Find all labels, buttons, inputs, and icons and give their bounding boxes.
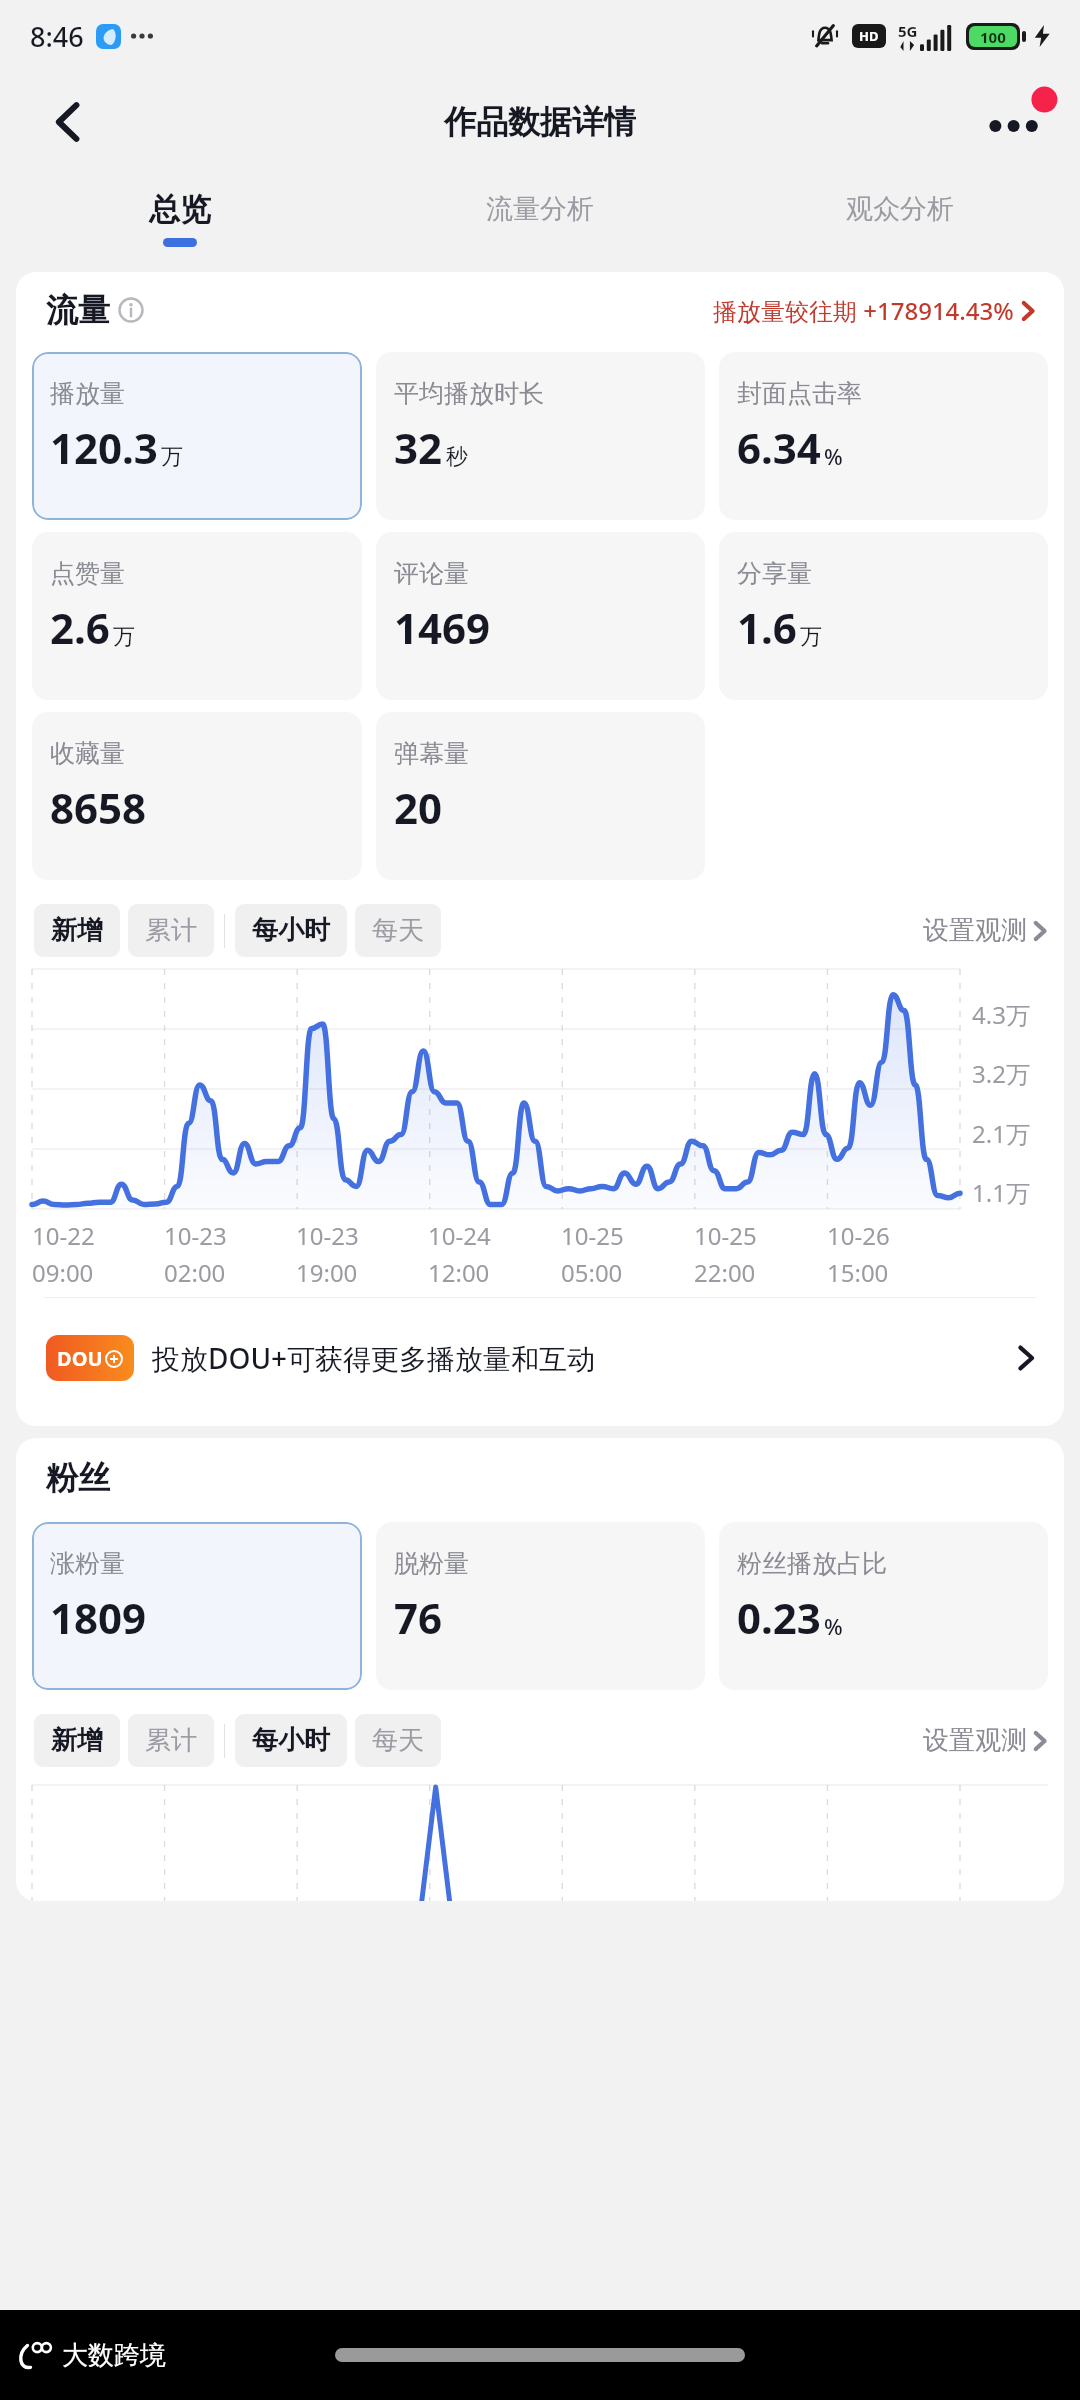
staticText: 3.2万 (972, 1057, 1030, 1090)
staticText: 15:00 (827, 1256, 889, 1289)
staticText: % (824, 1611, 843, 1641)
button[interactable]: 每天 (355, 1714, 441, 1767)
button[interactable]: 封面点击率 (719, 352, 1048, 520)
button[interactable]: 收藏量 (32, 712, 362, 880)
button[interactable]: 设置观测 (923, 1724, 1046, 1757)
button[interactable]: 评论量 (376, 532, 705, 700)
staticText: 10-26 (827, 1219, 890, 1252)
staticText: 10-25 (694, 1219, 757, 1252)
button[interactable]: 涨粉量 (32, 1522, 362, 1690)
staticText: 76 (394, 1589, 443, 1646)
staticText: 评论量 (394, 558, 469, 589)
staticText: 32 (394, 419, 443, 476)
staticText: 5G (898, 21, 918, 41)
button[interactable]: 分享量 (719, 532, 1048, 700)
staticText: 设置观测 (923, 914, 1027, 947)
staticText: 粉丝播放占比 (737, 1548, 887, 1579)
staticText: 秒 (446, 443, 468, 471)
staticText: 万 (800, 623, 822, 651)
staticText: 累计 (145, 914, 197, 947)
staticText: % (824, 441, 843, 471)
staticText: 0.23 (737, 1589, 821, 1646)
staticText: 每天 (372, 1724, 424, 1757)
button[interactable]: More options (980, 87, 1050, 157)
staticText: 新增 (51, 914, 103, 947)
staticText: 涨粉量 (50, 1548, 125, 1579)
button[interactable]: 设置观测 (923, 914, 1046, 947)
staticText: 1469 (394, 599, 491, 656)
button[interactable]: 每天 (355, 904, 441, 957)
staticText: 播放量 (50, 378, 125, 409)
staticText: 总览 (149, 190, 211, 229)
staticText: 观众分析 (846, 192, 954, 226)
staticText: 1809 (50, 1589, 147, 1646)
staticText: 10-24 (428, 1219, 491, 1252)
button[interactable]: DOU (32, 1304, 1048, 1412)
button[interactable]: 新增 (34, 1714, 120, 1767)
staticText: 流量 (46, 290, 110, 330)
staticText: 10-23 (164, 1219, 227, 1252)
button[interactable]: 点赞量 (32, 532, 362, 700)
button[interactable]: Back (40, 94, 96, 150)
staticText: 22:00 (694, 1256, 756, 1289)
staticText: 每小时 (252, 1724, 330, 1757)
staticText: 05:00 (561, 1256, 623, 1289)
staticText: HD (859, 27, 879, 45)
staticText: 1.1万 (972, 1176, 1030, 1209)
staticText: 新增 (51, 1724, 103, 1757)
button[interactable]: 播放量较往期 +178914.43% (713, 294, 1034, 327)
staticText: 设置观测 (923, 1724, 1027, 1757)
staticText: 作品数据详情 (444, 102, 636, 142)
staticText: 每小时 (252, 914, 330, 947)
staticText: 投放DOU+可获得更多播放量和互动 (152, 1339, 596, 1377)
button[interactable]: 观众分析 (720, 172, 1080, 264)
staticText: 点赞量 (50, 558, 125, 589)
button[interactable]: 流量分析 (360, 172, 720, 264)
button[interactable]: 粉丝播放占比 (719, 1522, 1048, 1690)
staticText: 弹幕量 (394, 738, 469, 769)
staticText: 封面点击率 (737, 378, 862, 409)
button[interactable]: 每小时 (235, 1714, 347, 1767)
staticText: 10-22 (32, 1219, 95, 1252)
staticText: 平均播放时长 (394, 378, 544, 409)
staticText: 120.3 (50, 419, 158, 476)
staticText: 2.6 (50, 599, 110, 656)
staticText: 累计 (145, 1724, 197, 1757)
button[interactable]: 累计 (128, 904, 214, 957)
button[interactable]: 每小时 (235, 904, 347, 957)
button[interactable]: 累计 (128, 1714, 214, 1767)
staticText: 8658 (50, 779, 147, 836)
staticText: 10-25 (561, 1219, 624, 1252)
staticText: 19:00 (296, 1256, 358, 1289)
staticText: 12:00 (428, 1256, 490, 1289)
button[interactable]: 脱粉量 (376, 1522, 705, 1690)
staticText: 脱粉量 (394, 1548, 469, 1579)
button[interactable]: 总览 (0, 172, 360, 264)
staticText: 8:46 (30, 18, 84, 55)
staticText: 1.6 (737, 599, 797, 656)
button[interactable]: 播放量 (32, 352, 362, 520)
staticText: 万 (113, 623, 135, 651)
staticText: DOU (57, 1345, 103, 1372)
staticText: 万 (161, 443, 183, 471)
staticText: 大数跨境 (62, 2339, 166, 2372)
button[interactable]: 弹幕量 (376, 712, 705, 880)
staticText: 100 (980, 27, 1006, 47)
staticText: 20 (394, 779, 443, 836)
staticText: 收藏量 (50, 738, 125, 769)
button[interactable]: 新增 (34, 904, 120, 957)
staticText: 4.3万 (972, 998, 1030, 1031)
staticText: 09:00 (32, 1256, 94, 1289)
staticText: 流量分析 (486, 192, 594, 226)
staticText: 粉丝 (46, 1458, 110, 1498)
staticText: 播放量较往期 +178914.43% (713, 294, 1014, 327)
staticText: 6.34 (737, 419, 821, 476)
button[interactable]: 平均播放时长 (376, 352, 705, 520)
staticText: 2.1万 (972, 1117, 1030, 1150)
staticText: 分享量 (737, 558, 812, 589)
staticText: 10-23 (296, 1219, 359, 1252)
staticText: 每天 (372, 914, 424, 947)
staticText: 02:00 (164, 1256, 226, 1289)
